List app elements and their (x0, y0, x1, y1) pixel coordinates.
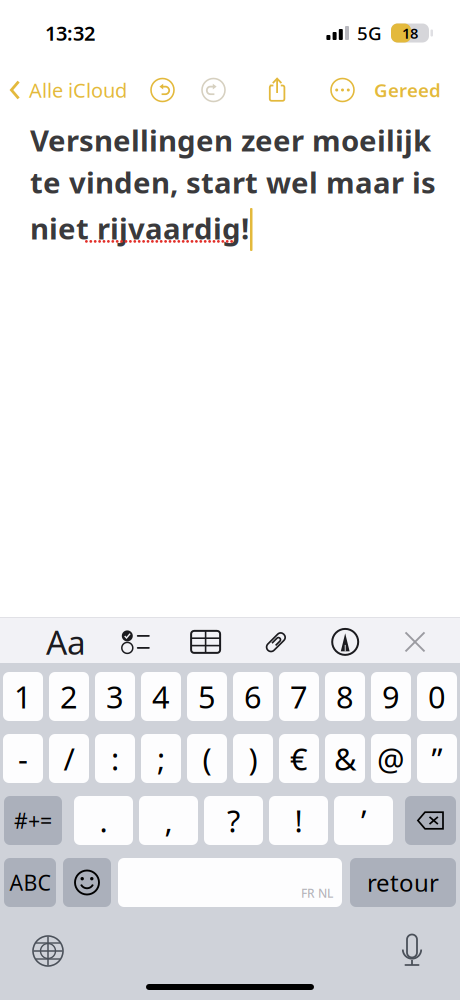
staticText: / (63, 738, 74, 779)
button[interactable]: 8 (325, 672, 365, 721)
button[interactable]: 7 (279, 672, 319, 721)
button[interactable]: / (49, 734, 89, 783)
staticText: @ (377, 738, 405, 779)
staticText: niet (30, 208, 97, 247)
button[interactable]: 2 (49, 672, 89, 721)
button[interactable]: Attach file (251, 620, 299, 664)
staticText: 5 (198, 676, 216, 717)
staticText: : (111, 738, 119, 779)
button[interactable]: Markup (321, 620, 369, 664)
staticText: retour (367, 867, 439, 898)
button[interactable]: ” (417, 734, 457, 783)
staticText: 18 (402, 23, 418, 43)
button[interactable]: Emoji (63, 858, 111, 907)
button[interactable]: Close keyboard (391, 620, 439, 664)
button[interactable]: retour (350, 858, 456, 907)
staticText: . (99, 800, 107, 841)
button[interactable]: . (74, 796, 133, 845)
button[interactable]: Alle iCloud (0, 69, 127, 111)
staticText: ( (202, 738, 211, 779)
button[interactable]: Table (182, 620, 230, 664)
staticText: ” (431, 738, 442, 779)
staticText: rijvaardig! (97, 208, 249, 247)
button[interactable]: Switch keyboard (24, 927, 72, 975)
staticText: ! (294, 800, 302, 841)
button[interactable]: More (324, 71, 361, 108)
staticText: 4 (152, 676, 170, 717)
button[interactable]: 3 (95, 672, 135, 721)
staticText: 8 (336, 676, 354, 717)
button[interactable]: ! (269, 796, 328, 845)
button[interactable]: Space (118, 858, 342, 907)
staticText: te vinden, start wel maar is (30, 162, 436, 201)
button[interactable]: & (325, 734, 365, 783)
button[interactable]: Delete (405, 796, 456, 845)
staticText: 3 (106, 676, 124, 717)
button[interactable]: 5 (187, 672, 227, 721)
staticText: ) (248, 738, 257, 779)
staticText: 5G (357, 21, 382, 45)
button[interactable]: Redo (195, 71, 232, 108)
staticText: 2 (60, 676, 78, 717)
staticText: ? (227, 800, 240, 841)
staticText: 6 (244, 676, 262, 717)
button[interactable]: Gereed (374, 70, 460, 110)
button[interactable]: Undo (144, 71, 181, 108)
button[interactable]: #+= (4, 796, 62, 845)
staticText: Aa (46, 620, 86, 664)
button[interactable]: , (139, 796, 198, 845)
staticText: , (164, 800, 172, 841)
button[interactable]: 6 (233, 672, 273, 721)
staticText: 0 (428, 676, 446, 717)
button[interactable]: 9 (371, 672, 411, 721)
staticText: Alle iCloud (29, 77, 127, 103)
staticText: & (334, 738, 356, 779)
staticText: #+= (14, 806, 52, 835)
staticText: ABC (9, 868, 50, 897)
button[interactable]: Dictate (391, 926, 433, 976)
staticText: 1 (14, 676, 32, 717)
button[interactable]: Checklist (112, 620, 160, 664)
button[interactable]: @ (371, 734, 411, 783)
staticText: Versnellingen zeer moeilijk (30, 120, 431, 159)
button[interactable]: 1 (3, 672, 43, 721)
staticText: Gereed (374, 78, 441, 102)
staticText: - (18, 738, 28, 779)
button[interactable]: ( (187, 734, 227, 783)
staticText: 9 (382, 676, 400, 717)
staticText: ’ (361, 800, 366, 841)
button[interactable]: ABC (4, 858, 56, 907)
button[interactable]: ) (233, 734, 273, 783)
button[interactable]: 4 (141, 672, 181, 721)
button[interactable]: : (95, 734, 135, 783)
button[interactable]: ’ (334, 796, 393, 845)
staticText: ; (157, 738, 165, 779)
button[interactable]: - (3, 734, 43, 783)
button[interactable]: ? (204, 796, 263, 845)
button[interactable]: € (279, 734, 319, 783)
staticText: 7 (290, 676, 308, 717)
button[interactable]: Share (260, 69, 295, 110)
staticText: 13:32 (45, 20, 95, 46)
button[interactable]: 0 (417, 672, 457, 721)
staticText: € (290, 738, 308, 779)
button[interactable]: Aa (42, 620, 90, 664)
staticText: FR NL (301, 885, 333, 901)
button[interactable]: ; (141, 734, 181, 783)
